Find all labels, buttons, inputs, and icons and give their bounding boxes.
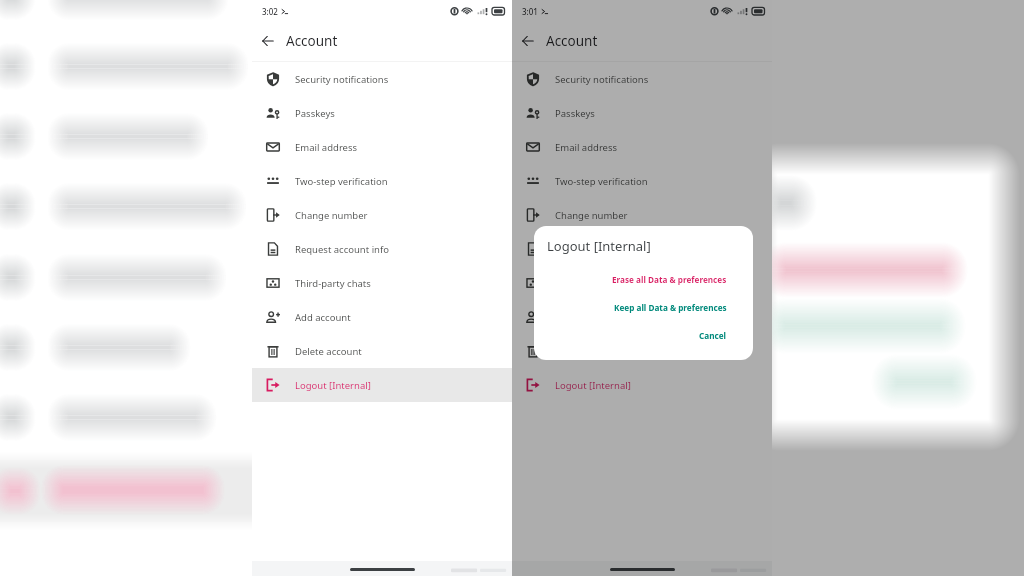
staticText: Passkeys — [555, 107, 595, 120]
button[interactable]: Logout [Internal] — [512, 368, 772, 402]
staticText: Erase all Data & preferences — [612, 274, 727, 285]
button[interactable]: Two-step verification — [252, 164, 512, 198]
button[interactable]: Logout [Internal] — [252, 368, 512, 402]
staticText: Add account — [295, 311, 351, 324]
staticText: 3:02 — [262, 6, 278, 17]
button[interactable]: Back — [512, 22, 544, 59]
staticText: Change number — [555, 209, 628, 222]
button[interactable]: Security notifications — [512, 62, 772, 96]
button[interactable]: Add account — [252, 300, 512, 334]
staticText: Logout [Internal] — [555, 379, 631, 392]
staticText: 3:01 — [522, 6, 538, 17]
staticText: Change number — [295, 209, 368, 222]
staticText: Logout [Internal] — [295, 379, 371, 392]
button[interactable]: Request account info — [512, 232, 772, 266]
button[interactable]: Delete account — [252, 334, 512, 368]
button[interactable]: Email address — [252, 130, 512, 164]
staticText: Request account info — [295, 243, 389, 256]
staticText: Keep all Data & preferences — [614, 302, 727, 313]
button[interactable]: Cancel — [534, 326, 753, 345]
button[interactable]: Erase all Data & preferences — [534, 270, 753, 289]
staticText: Account — [546, 32, 598, 50]
staticText: Security notifications — [555, 73, 649, 86]
button[interactable]: Security notifications — [252, 62, 512, 96]
button[interactable]: Email address — [512, 130, 772, 164]
button[interactable]: Add account — [512, 300, 772, 334]
button[interactable]: Delete account — [512, 334, 772, 368]
staticText: Passkeys — [295, 107, 335, 120]
staticText: Security notifications — [295, 73, 389, 86]
staticText: Account — [286, 32, 338, 50]
button[interactable]: Back — [252, 22, 284, 59]
staticText: Email address — [295, 141, 358, 154]
staticText: Cancel — [699, 330, 727, 341]
button[interactable]: Request account info — [252, 232, 512, 266]
button[interactable]: Third-party chats — [252, 266, 512, 300]
staticText: Logout [Internal] — [547, 237, 651, 255]
button[interactable]: Passkeys — [252, 96, 512, 130]
button[interactable]: Change number — [252, 198, 512, 232]
button[interactable]: Passkeys — [512, 96, 772, 130]
staticText: Email address — [555, 141, 618, 154]
button[interactable]: Two-step verification — [512, 164, 772, 198]
staticText: Two-step verification — [295, 175, 388, 188]
staticText: Third-party chats — [555, 277, 631, 290]
staticText: Two-step verification — [555, 175, 648, 188]
button[interactable]: Change number — [512, 198, 772, 232]
staticText: Delete account — [295, 345, 362, 358]
button[interactable]: Keep all Data & preferences — [534, 298, 753, 317]
staticText: Third-party chats — [295, 277, 371, 290]
button[interactable]: Third-party chats — [512, 266, 772, 300]
staticText: Request account info — [555, 243, 649, 256]
